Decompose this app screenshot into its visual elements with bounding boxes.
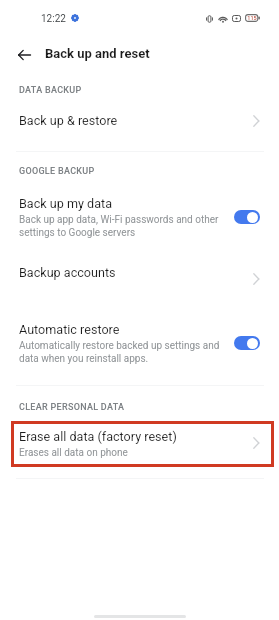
staticText: Backup accounts [19, 265, 116, 280]
button[interactable]: Open [247, 270, 265, 288]
button[interactable]: Back [10, 41, 38, 69]
button[interactable]: Open [247, 434, 265, 452]
staticText: DATA BACKUP [19, 85, 82, 96]
staticText: Back up and reset [45, 46, 150, 61]
staticText: CLEAR PERSONAL DATA [19, 402, 125, 413]
staticText: 115 [247, 15, 257, 21]
staticText: GOOGLE BACKUP [19, 166, 95, 177]
staticText: Erases all data on phone [19, 447, 128, 459]
staticText: Automatic restore [19, 322, 120, 337]
button[interactable]: Back up my data [0, 190, 279, 242]
button[interactable]: Backup accounts [0, 257, 279, 285]
button[interactable]: Toggle on [234, 336, 260, 350]
button[interactable]: Automatic restore [0, 316, 279, 368]
staticText: Back up my data [19, 196, 112, 211]
staticText: Erase all data (factory reset) [19, 429, 177, 444]
staticText: Back up & restore [19, 113, 118, 128]
button[interactable]: Open [247, 112, 265, 130]
button[interactable]: Back up & restore [0, 105, 279, 133]
staticText: 12:22 [41, 13, 66, 25]
button[interactable]: Toggle on [234, 210, 260, 224]
staticText: Automatically restore backed up settings… [19, 340, 220, 364]
staticText: Back up app data, Wi-Fi passwords and ot… [19, 214, 219, 238]
button[interactable]: Erase all data (factory reset) [0, 423, 279, 467]
